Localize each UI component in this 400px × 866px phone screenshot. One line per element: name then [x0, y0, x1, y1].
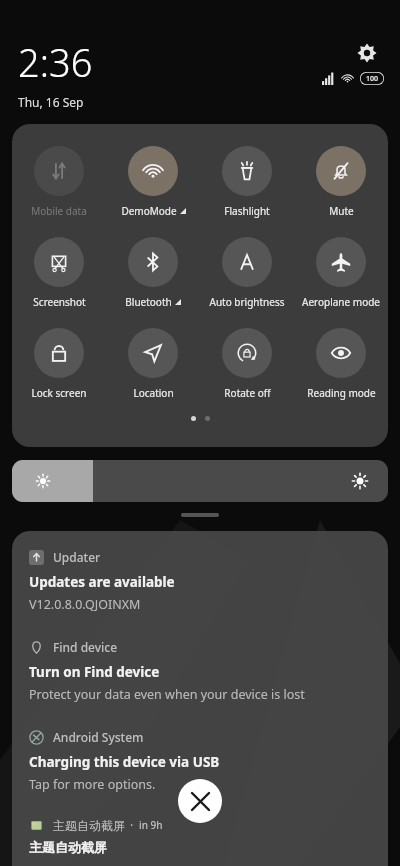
- staticText: Auto brightness: [209, 295, 285, 309]
- staticText: Rotate off: [224, 386, 271, 400]
- button[interactable]: Location: [106, 328, 200, 400]
- staticText: Flashlight: [224, 204, 270, 218]
- staticText: Android System: [53, 729, 144, 745]
- staticText: 2:36: [18, 36, 93, 88]
- staticText: Turn on Find device: [29, 663, 160, 681]
- button[interactable]: Rotate off: [200, 328, 294, 400]
- button[interactable]: Lock screen: [12, 328, 106, 400]
- staticText: Updates are available: [29, 573, 175, 591]
- button[interactable]: Find device: [29, 639, 371, 703]
- staticText: ·: [130, 817, 134, 833]
- button[interactable]: Close: [178, 779, 222, 823]
- staticText: V12.0.8.0.QJOINXM: [29, 596, 141, 613]
- button[interactable]: Reading mode: [294, 328, 388, 400]
- staticText: in 9h: [139, 818, 163, 832]
- button[interactable]: Updater: [29, 549, 371, 613]
- button[interactable]: Brightness: [12, 460, 388, 502]
- button[interactable]: Aeroplane mode: [294, 237, 388, 309]
- button[interactable]: DemoMode: [106, 146, 200, 218]
- staticText: DemoMode: [121, 204, 177, 218]
- button[interactable]: Mute: [294, 146, 388, 218]
- staticText: Mobile data: [31, 204, 87, 218]
- button[interactable]: Android System: [29, 729, 371, 793]
- staticText: Protect your data even when your device …: [29, 686, 305, 703]
- button[interactable]: Flashlight: [200, 146, 294, 218]
- staticText: Find device: [53, 639, 118, 655]
- button[interactable]: Bluetooth: [106, 237, 200, 309]
- staticText: Thu, 16 Sep: [18, 94, 84, 110]
- staticText: Tap for more options.: [29, 776, 156, 793]
- staticText: Mute: [329, 204, 354, 218]
- staticText: Updater: [53, 549, 101, 565]
- staticText: Lock screen: [31, 386, 87, 400]
- staticText: Reading mode: [307, 386, 376, 400]
- staticText: Charging this device via USB: [29, 753, 220, 771]
- staticText: Screenshot: [33, 295, 86, 309]
- staticText: Location: [133, 386, 174, 400]
- button[interactable]: Mobile data: [12, 146, 106, 218]
- button[interactable]: Settings: [350, 36, 384, 70]
- staticText: 主题自动截屏: [53, 818, 125, 833]
- button[interactable]: Auto brightness: [200, 237, 294, 309]
- staticText: 100: [366, 74, 379, 84]
- staticText: Aeroplane mode: [302, 295, 380, 309]
- staticText: 主题自动截屏: [29, 839, 107, 855]
- button[interactable]: Screenshot: [12, 237, 106, 309]
- staticText: Bluetooth: [125, 295, 172, 309]
